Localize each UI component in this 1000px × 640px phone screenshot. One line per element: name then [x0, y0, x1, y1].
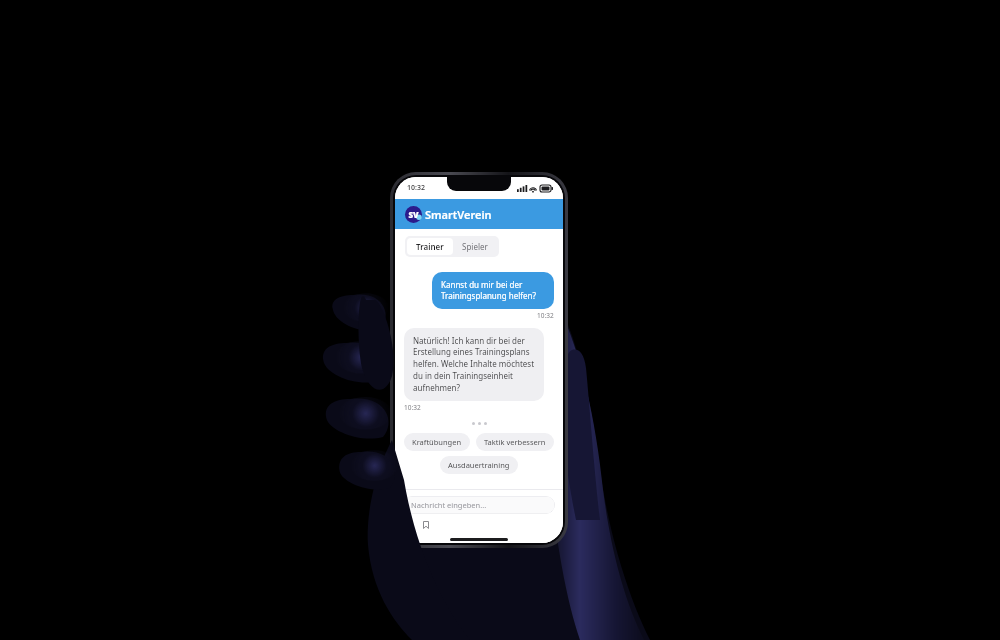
- staticText: 10:32: [407, 183, 425, 193]
- button[interactable]: Kraftübungen: [404, 433, 470, 451]
- staticText: Trainer: [416, 241, 444, 252]
- button[interactable]: Ausdauertraining: [440, 456, 518, 474]
- staticText: Spieler: [462, 241, 488, 252]
- button[interactable]: Nachricht eingeben...: [403, 496, 555, 514]
- staticText: Kraftübungen: [412, 437, 462, 447]
- button[interactable]: Spieler: [453, 238, 497, 255]
- button[interactable]: Taktik verbessern: [476, 433, 554, 451]
- staticText: Ausdauertraining: [448, 460, 510, 470]
- staticText: SmartVerein: [425, 207, 492, 222]
- staticText: Kannst du mir bei der Trainingsplanung h…: [441, 279, 545, 302]
- button[interactable]: SV: [395, 199, 563, 229]
- button[interactable]: Search: [404, 520, 414, 530]
- staticText: Taktik verbessern: [484, 437, 546, 447]
- button[interactable]: Bookmark: [421, 520, 431, 530]
- staticText: Natürlich! Ich kann dir bei der Erstellu…: [413, 335, 535, 394]
- button[interactable]: Trainer: [407, 238, 453, 255]
- staticText: 10:32: [537, 311, 554, 320]
- staticText: SV: [408, 209, 419, 220]
- staticText: 10:32: [404, 403, 421, 412]
- button[interactable]: Kannst du mir bei der Trainingsplanung h…: [432, 272, 554, 309]
- button[interactable]: Natürlich! Ich kann dir bei der Erstellu…: [404, 328, 544, 401]
- staticText: Nachricht eingeben...: [411, 500, 487, 510]
